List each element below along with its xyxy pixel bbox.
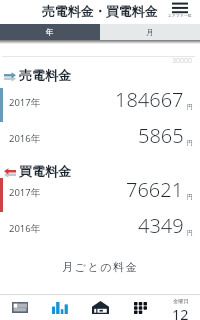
staticText: 円 [187, 139, 193, 147]
staticText: 売電料金・買電料金 [42, 4, 158, 20]
staticText: 金曜日 [173, 298, 189, 305]
button[interactable]: 月ごとの料金 [0, 256, 200, 278]
staticText: 76621 [126, 176, 184, 203]
button[interactable]: Apps [120, 295, 160, 320]
staticText: 184667 [115, 86, 184, 113]
button[interactable]: Friday 12 [160, 295, 200, 320]
button[interactable]: Charts [40, 295, 80, 320]
button[interactable]: 月 [100, 24, 200, 40]
staticText: 月ごとの料金 [62, 260, 139, 274]
button[interactable]: 2016年 [0, 214, 200, 248]
staticText: 年 [46, 27, 54, 37]
staticText: 円 [187, 193, 193, 201]
staticText: 5865 [138, 122, 184, 149]
button[interactable]: 年 [0, 24, 100, 40]
button[interactable]: Home [80, 295, 120, 320]
button[interactable]: 2017年 [0, 88, 200, 122]
staticText: 2017年 [9, 186, 41, 199]
button[interactable]: 2017年 [0, 178, 200, 212]
staticText: 12 [172, 305, 189, 320]
staticText: 2016年 [9, 222, 41, 235]
staticText: 円 [187, 103, 193, 111]
staticText: 売電料金 [19, 67, 71, 83]
button[interactable]: エネマネ一覧 [168, 2, 192, 19]
staticText: 買電料金 [19, 163, 71, 179]
button[interactable]: Overview [0, 295, 40, 320]
button[interactable]: 2016年 [0, 124, 200, 158]
staticText: 2017年 [9, 96, 41, 109]
staticText: 4349 [138, 212, 184, 239]
staticText: 2016年 [9, 132, 41, 145]
staticText: 円 [187, 229, 193, 237]
staticText: エネマネ一覧 [168, 13, 192, 18]
staticText: 月 [146, 27, 154, 37]
staticText: 30000 [172, 56, 193, 66]
